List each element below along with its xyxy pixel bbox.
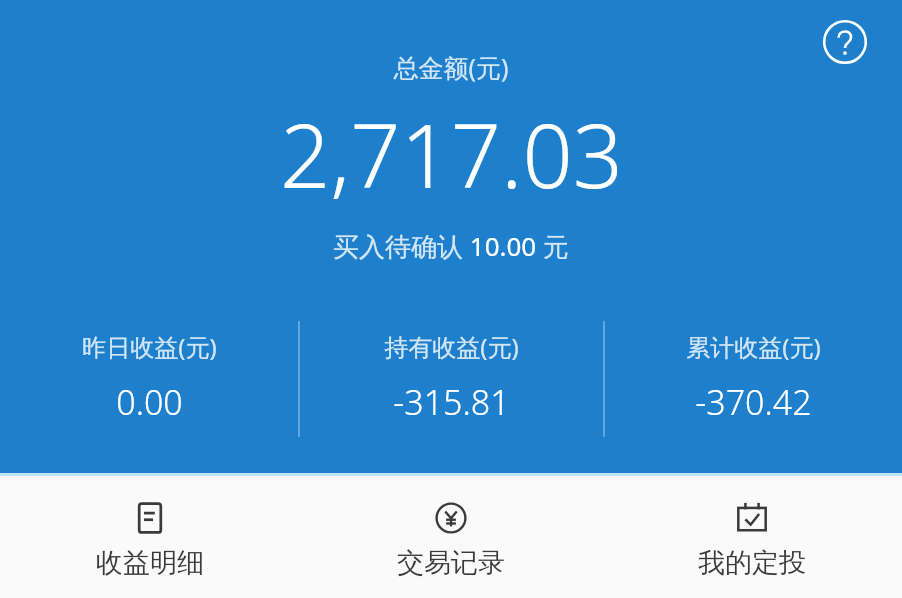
button[interactable]: 收益明细 <box>0 476 300 598</box>
staticText: 昨日收益(元) <box>82 330 217 363</box>
button[interactable]: 我的定投 <box>601 476 902 598</box>
staticText: 收益明细 <box>96 546 204 580</box>
button[interactable]: 交易记录 <box>300 476 601 598</box>
staticText: 交易记录 <box>397 546 505 580</box>
button[interactable]: Help <box>819 16 871 68</box>
staticText: 持有收益(元) <box>384 330 519 363</box>
staticText: 总金额(元) <box>393 50 509 84</box>
staticText: 0.00 <box>116 379 183 425</box>
staticText: -315.81 <box>393 379 510 425</box>
staticText: 买入待确认 10.00 元 <box>333 228 569 264</box>
button[interactable]: 昨日收益(元) <box>0 318 298 440</box>
button[interactable]: 累计收益(元) <box>605 318 902 440</box>
staticText: 累计收益(元) <box>686 330 821 363</box>
button[interactable]: 持有收益(元) <box>300 318 603 440</box>
staticText: -370.42 <box>695 379 812 425</box>
staticText: 我的定投 <box>698 546 806 580</box>
staticText: 2,717.03 <box>280 94 623 214</box>
